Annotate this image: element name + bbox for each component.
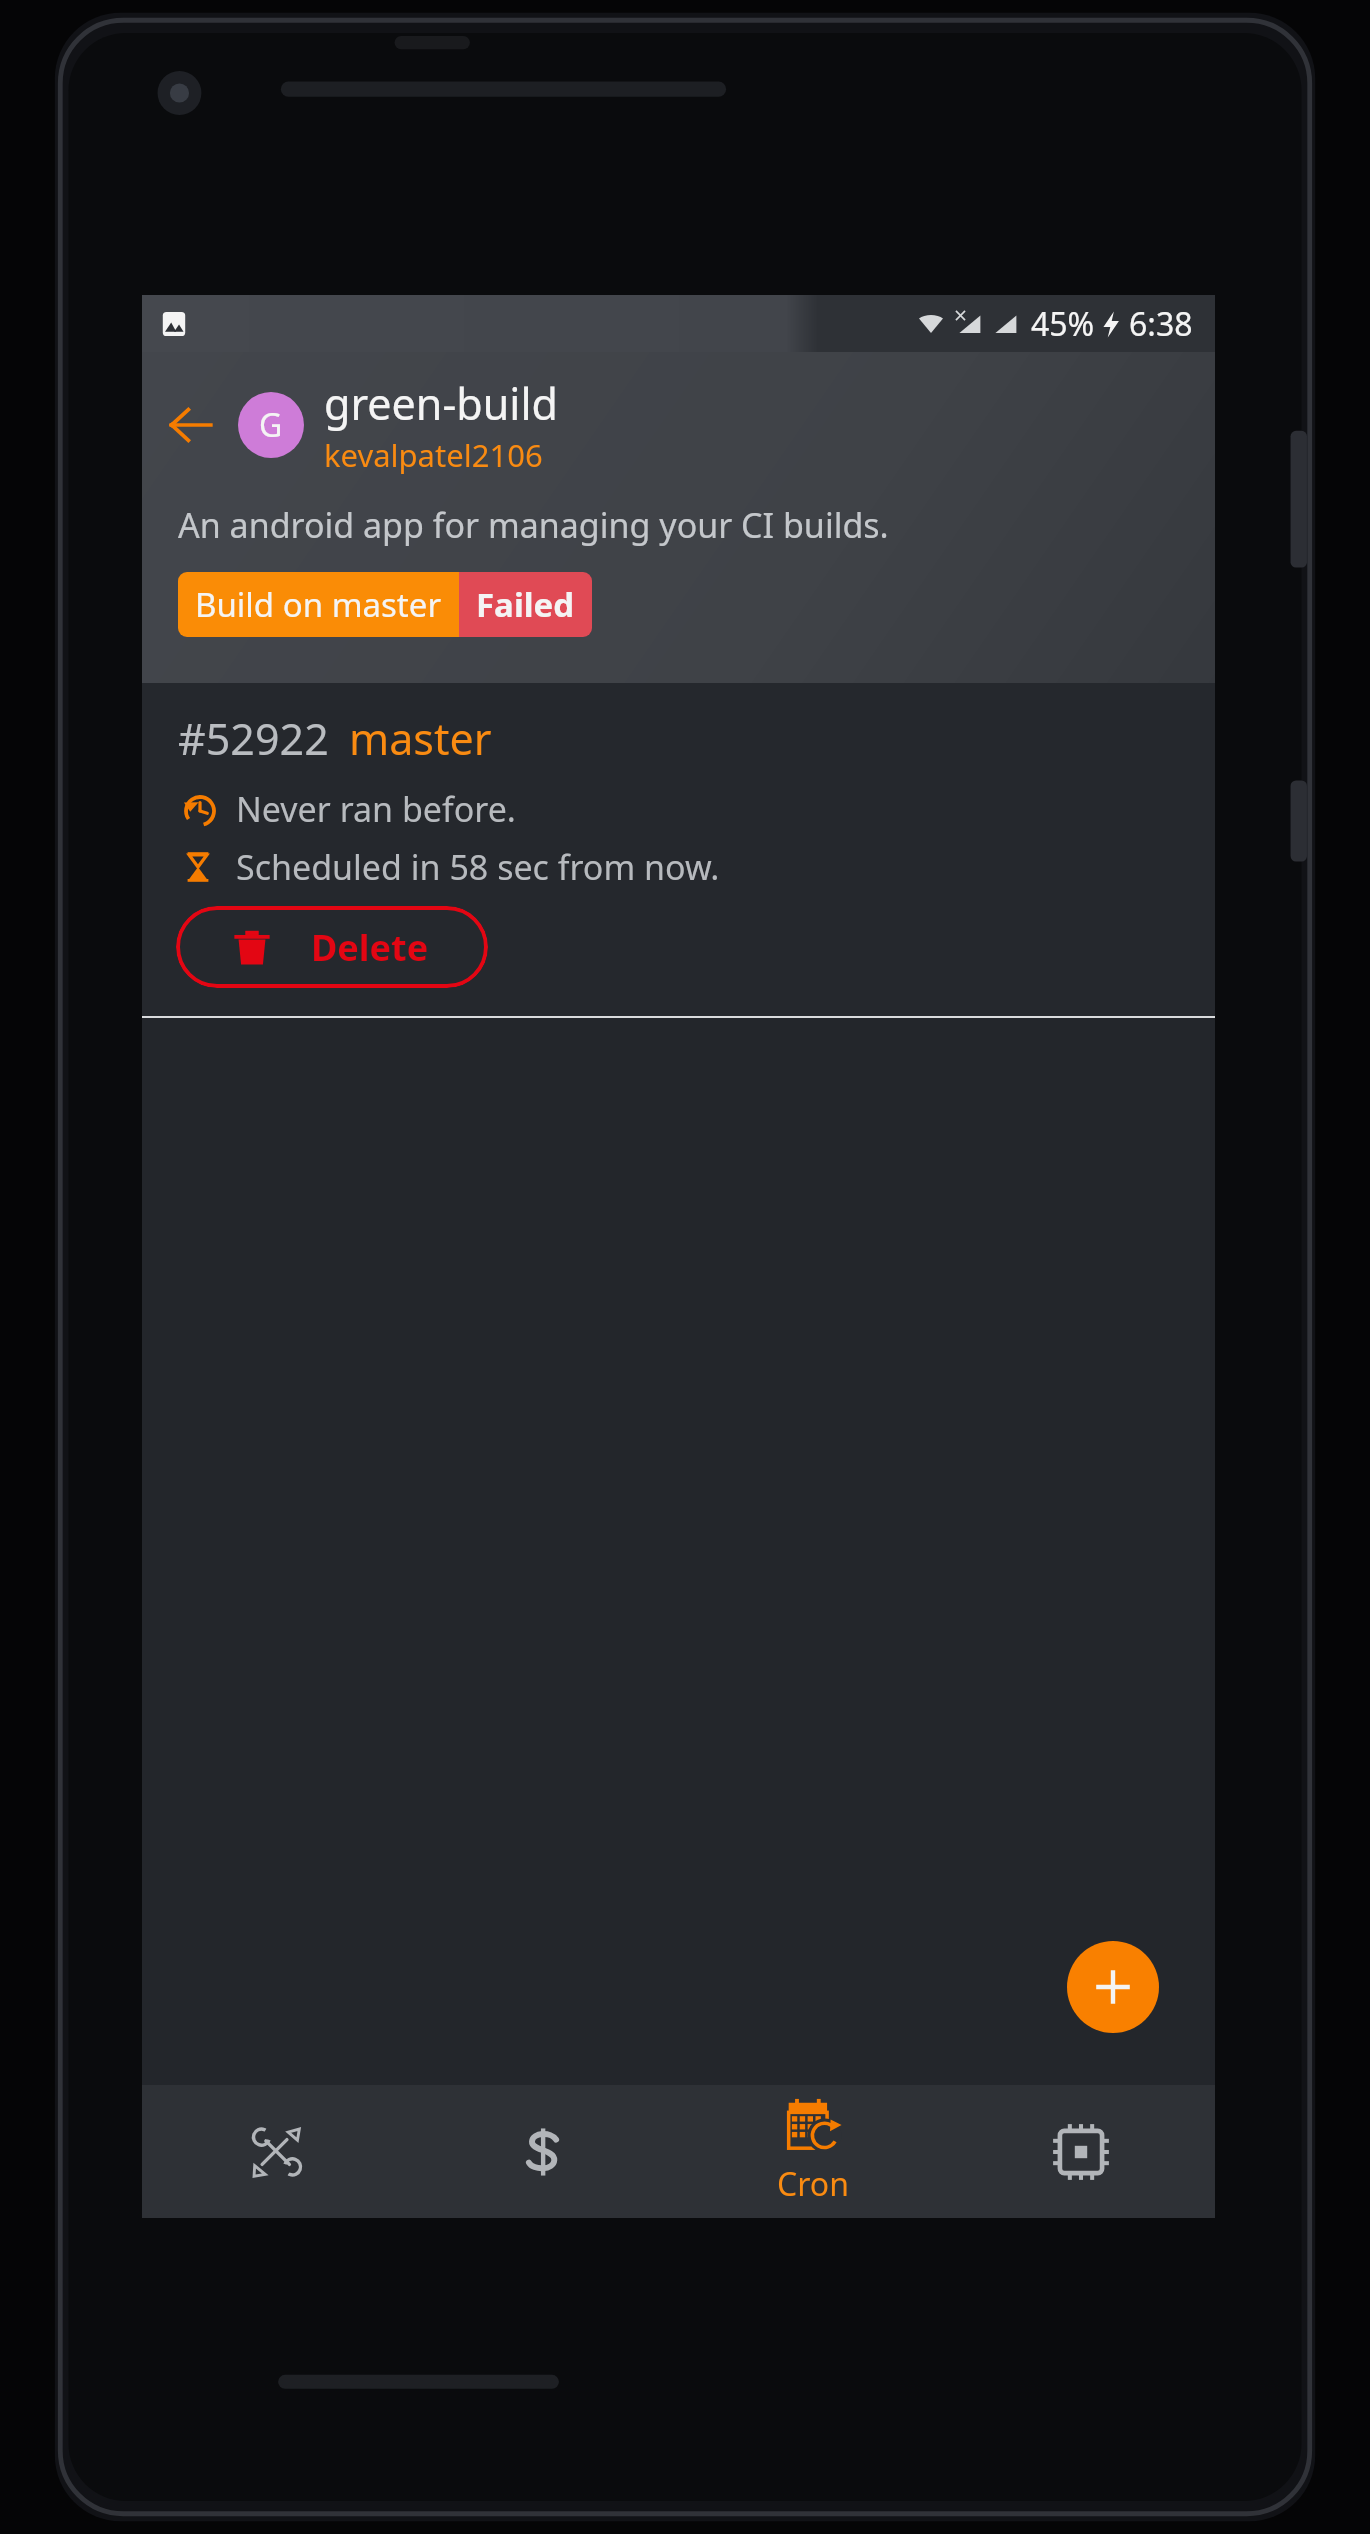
staticText: 45% [1031, 302, 1095, 346]
staticText: kevalpatel2106 [324, 434, 543, 476]
button[interactable]: Add cron job [1067, 1941, 1159, 2033]
staticText: Cron [777, 2162, 849, 2206]
staticText: 6:38 [1129, 302, 1193, 346]
staticText: master [349, 709, 492, 768]
staticText: An android app for managing your CI buil… [178, 502, 889, 548]
staticText: Never ran before. [236, 786, 516, 832]
staticText: Failed [476, 582, 575, 627]
staticText: Build on master [195, 582, 442, 627]
button[interactable]: Billing [411, 2085, 679, 2218]
button[interactable]: Build on master [178, 572, 459, 637]
staticText: Scheduled in 58 sec from now. [236, 844, 720, 890]
button[interactable]: Failed [459, 572, 592, 637]
staticText: green-build [324, 374, 558, 433]
button[interactable]: Cron [679, 2085, 947, 2218]
button[interactable]: Tools [142, 2085, 411, 2218]
staticText: Delete [311, 923, 429, 972]
button[interactable]: Delete [176, 906, 488, 988]
button[interactable]: #52922 [142, 683, 1215, 1018]
staticText: #52922 [178, 709, 329, 768]
staticText: G [259, 403, 283, 447]
button[interactable]: Environment [947, 2085, 1215, 2218]
button[interactable]: Back [154, 388, 228, 462]
